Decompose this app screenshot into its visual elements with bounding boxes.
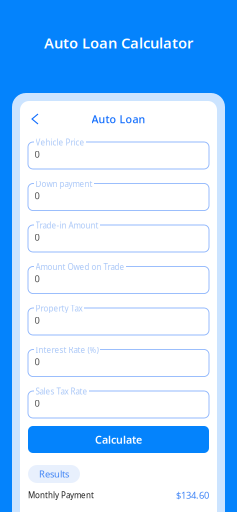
staticText: Results xyxy=(39,468,69,480)
staticText: Calculate xyxy=(95,432,142,447)
staticText: 0 xyxy=(34,314,39,326)
button[interactable]: Back xyxy=(27,109,43,129)
staticText: 0 xyxy=(34,397,39,409)
staticText: Trade-in Amount xyxy=(35,220,98,231)
button[interactable]: Calculate xyxy=(28,426,209,453)
staticText: Amount Owed on Trade xyxy=(35,261,124,272)
staticText: Auto Loan xyxy=(91,112,145,126)
staticText: $134.60 xyxy=(176,489,209,501)
staticText: Vehicle Price xyxy=(35,137,84,148)
staticText: 0 xyxy=(34,231,39,243)
staticText: Interest Rate (%) xyxy=(35,344,98,355)
button[interactable]: Results xyxy=(28,465,80,483)
staticText: 0 xyxy=(34,189,39,202)
staticText: Down payment xyxy=(35,178,92,189)
staticText: 0 xyxy=(34,355,39,368)
staticText: Property Tax xyxy=(35,303,82,314)
staticText: Sales Tax Rate xyxy=(35,386,87,397)
staticText: 0 xyxy=(34,272,39,285)
staticText: Monthly Payment xyxy=(28,490,94,500)
staticText: 0 xyxy=(34,148,39,160)
staticText: Auto Loan Calculator xyxy=(44,33,193,52)
